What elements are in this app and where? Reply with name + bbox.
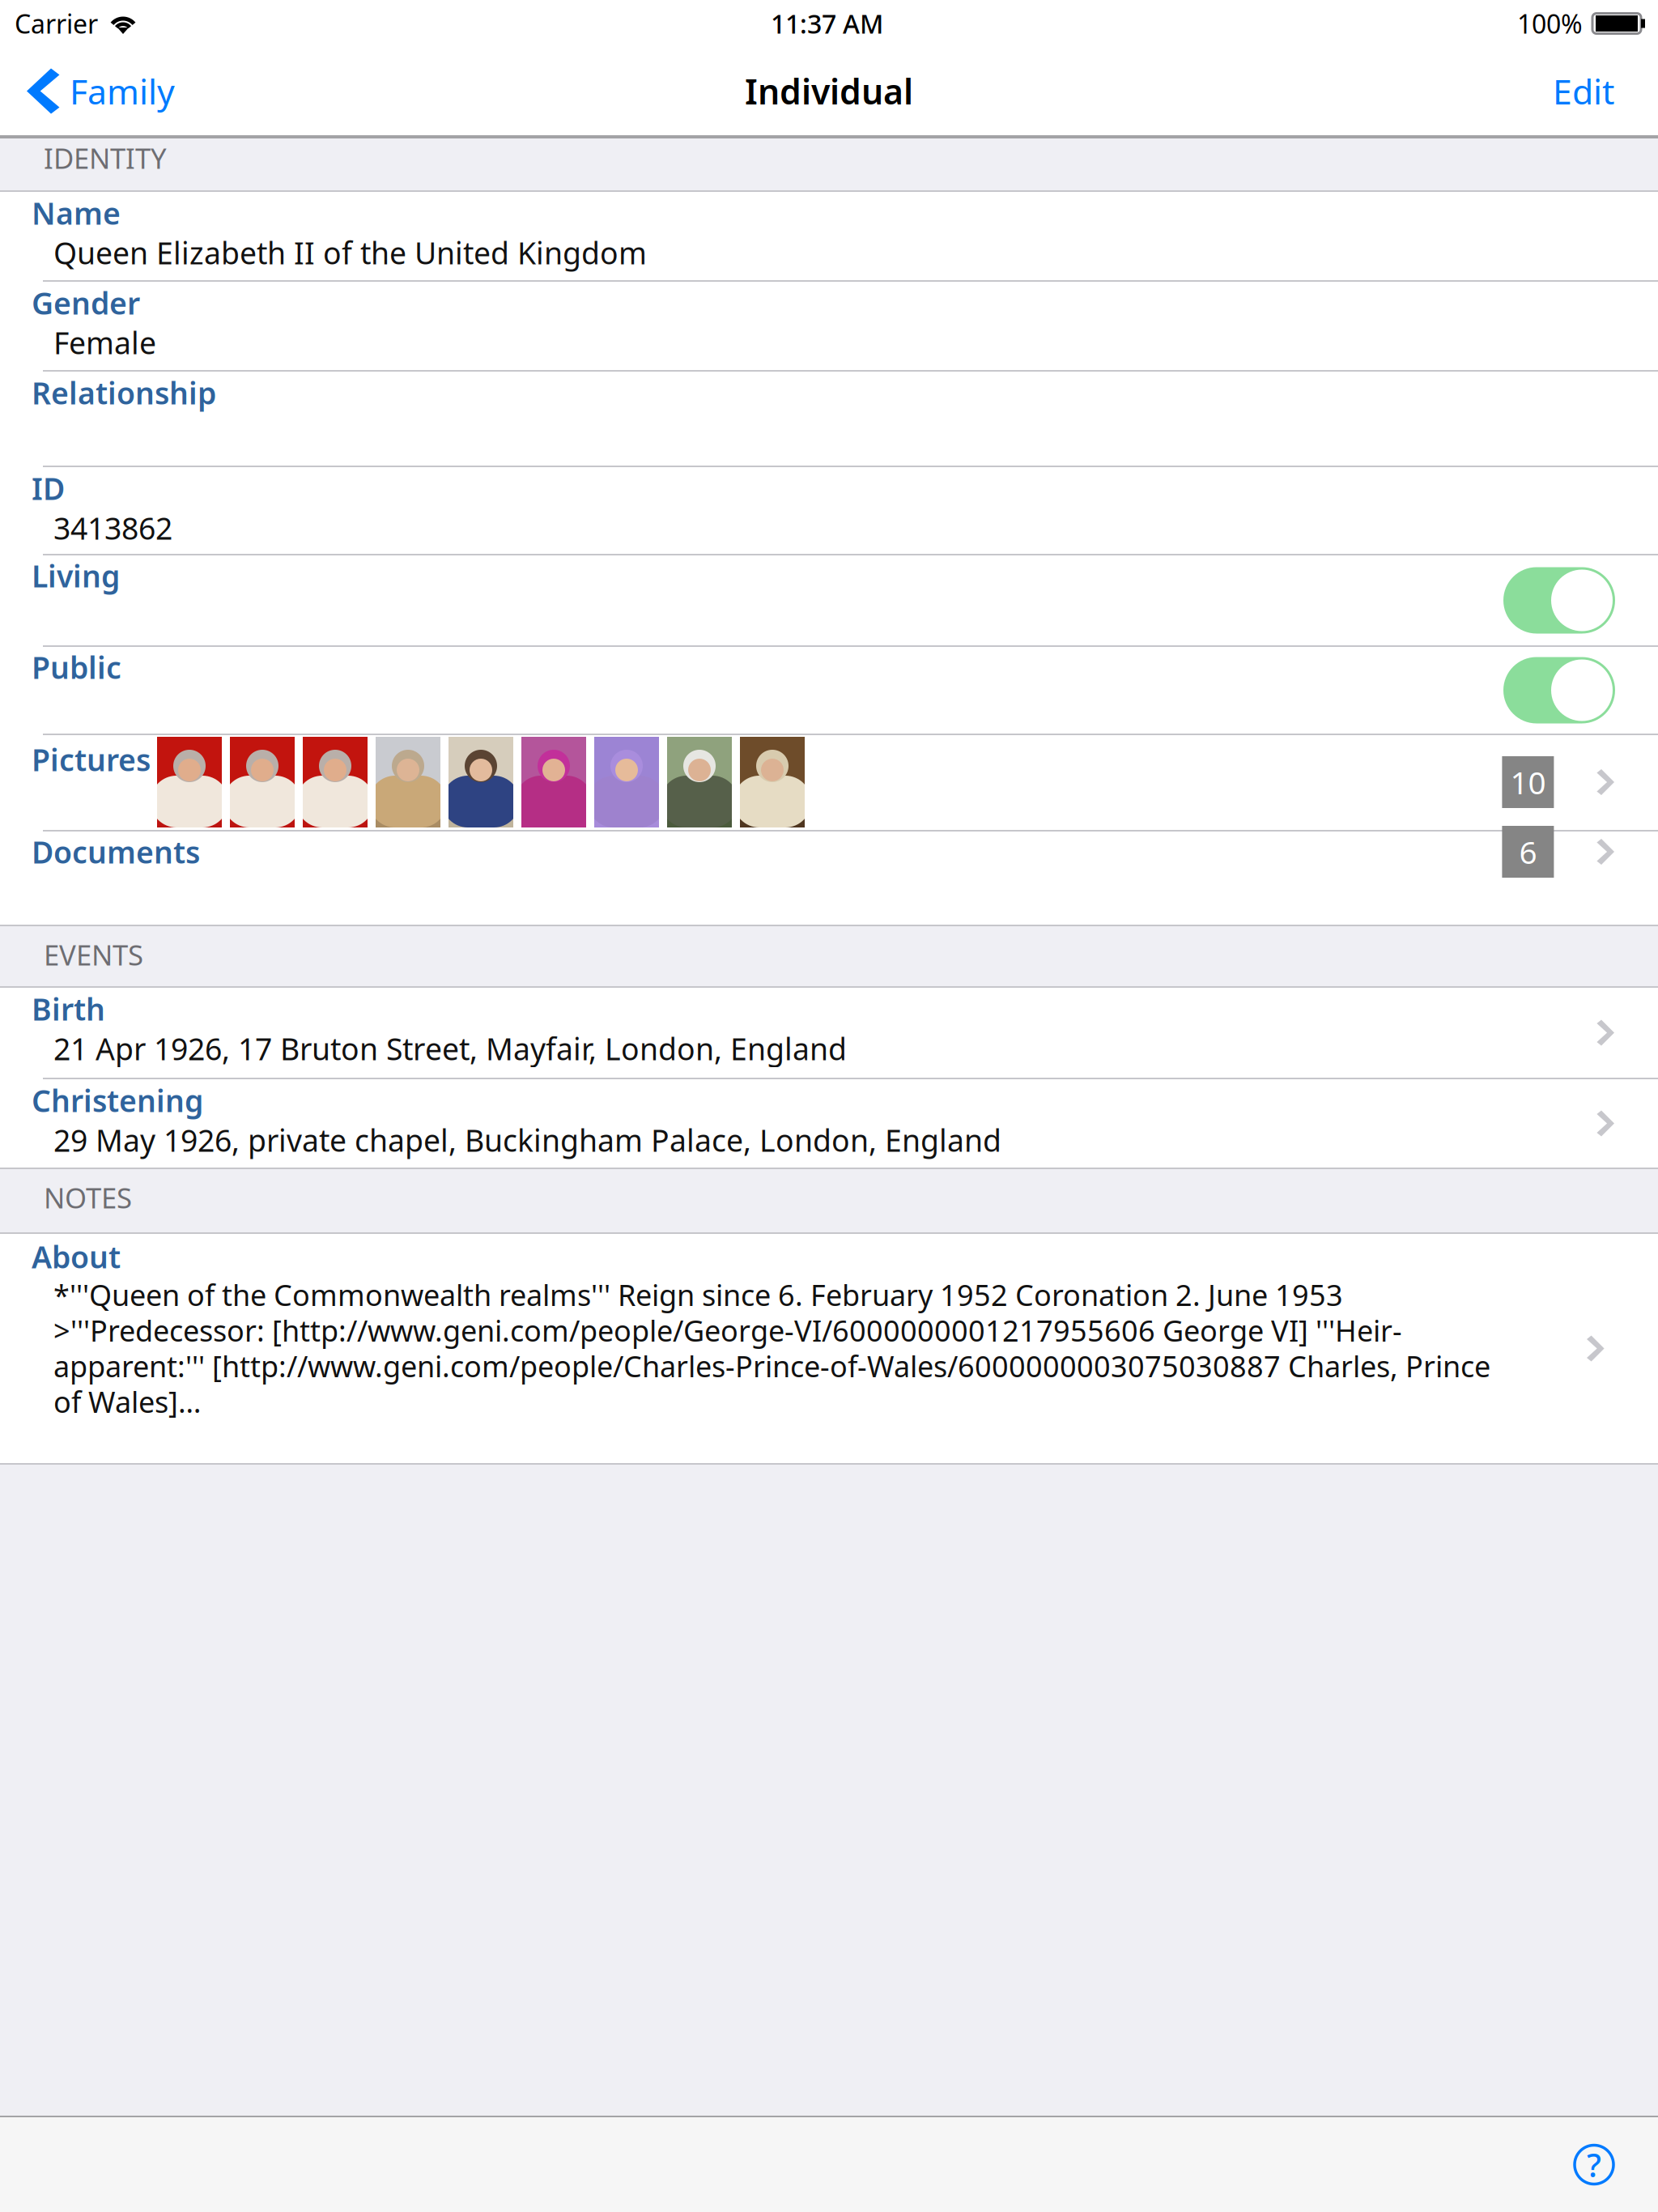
button[interactable]: Name xyxy=(0,192,1658,280)
button[interactable]: Living xyxy=(0,555,1658,645)
button[interactable]: Documents xyxy=(0,832,1658,925)
staticText: 21 Apr 1926, 17 Bruton Street, Mayfair, … xyxy=(53,1028,847,1069)
staticText: Pictures xyxy=(32,739,151,780)
button[interactable]: Pictures xyxy=(0,735,1658,830)
staticText: Family xyxy=(70,68,175,114)
staticText: IDENTITY xyxy=(44,139,167,177)
button[interactable]: Family xyxy=(0,47,324,136)
staticText: apparent:''' [http://www.geni.com/people… xyxy=(53,1347,1490,1385)
staticText: About xyxy=(32,1237,121,1277)
button[interactable]: Help xyxy=(1558,2128,1630,2201)
button[interactable]: Edit xyxy=(1415,47,1658,136)
staticText: Carrier xyxy=(15,6,98,41)
staticText: 29 May 1926, private chapel, Buckingham … xyxy=(53,1120,1001,1160)
staticText: Individual xyxy=(745,68,913,114)
staticText: >'''Predecessor: [http://www.geni.com/pe… xyxy=(53,1311,1402,1350)
staticText: NOTES xyxy=(44,1179,132,1216)
staticText: 11:37 AM xyxy=(771,6,883,41)
staticText: *'''Queen of the Commonwealth realms''' … xyxy=(53,1275,1343,1314)
staticText: Female xyxy=(53,322,156,363)
staticText: Gender xyxy=(32,283,140,323)
staticText: Documents xyxy=(32,832,200,872)
button[interactable]: Birth xyxy=(0,988,1658,1078)
staticText: 6 xyxy=(1519,831,1537,872)
button[interactable]: Gender xyxy=(0,282,1658,370)
staticText: Queen Elizabeth II of the United Kingdom xyxy=(53,233,647,273)
button[interactable]: Relationship xyxy=(0,372,1658,466)
staticText: Birth xyxy=(32,989,105,1029)
staticText: ? xyxy=(1587,2143,1601,2186)
button[interactable]: Public xyxy=(0,647,1658,734)
staticText: 10 xyxy=(1510,761,1546,803)
staticText: Relationship xyxy=(32,373,216,413)
staticText: EVENTS xyxy=(44,936,143,973)
staticText: Public xyxy=(32,647,121,687)
button[interactable]: ID xyxy=(0,467,1658,554)
staticText: Christening xyxy=(32,1080,203,1120)
staticText: Edit xyxy=(1553,68,1614,114)
button[interactable]: About xyxy=(0,1234,1658,1463)
staticText: of Wales]… xyxy=(53,1382,201,1421)
staticText: 3413862 xyxy=(53,508,172,548)
button[interactable]: Christening xyxy=(0,1079,1658,1168)
staticText: Living xyxy=(32,556,120,596)
staticText: 100% xyxy=(1517,6,1583,41)
staticText: Name xyxy=(32,193,121,233)
staticText: ID xyxy=(32,468,65,508)
